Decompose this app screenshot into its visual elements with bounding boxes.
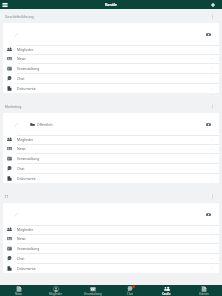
staticText: Veranstaltung xyxy=(17,66,40,71)
staticText: Mitglieder xyxy=(17,227,34,232)
button[interactable]: Mitglieder xyxy=(3,135,219,144)
button[interactable]: Chat xyxy=(3,73,219,83)
staticText: News xyxy=(17,236,26,241)
button[interactable]: Add xyxy=(209,1,217,9)
button[interactable]: Dokumente xyxy=(3,83,219,93)
button[interactable]: Dateien xyxy=(185,285,222,296)
staticText: Mitglieder xyxy=(17,47,34,52)
staticText: Mitglieder xyxy=(17,137,34,142)
staticText: News xyxy=(17,146,26,151)
staticText: Chat xyxy=(17,76,25,81)
button[interactable]: Dokumente xyxy=(3,173,219,183)
staticText: Mitglieder xyxy=(49,292,62,296)
button[interactable]: Menu xyxy=(1,1,9,9)
staticText: Veranstaltung xyxy=(17,156,40,161)
button[interactable]: Chat xyxy=(3,163,219,173)
staticText: Dokumente xyxy=(17,266,36,271)
staticText: Kanäle xyxy=(162,292,171,296)
staticText: Dokumente xyxy=(17,86,36,91)
button[interactable]: Veranstaltung xyxy=(74,285,111,296)
button[interactable]: Chat xyxy=(111,285,148,296)
button[interactable]: More options xyxy=(208,12,217,21)
button[interactable]: Chat xyxy=(3,253,219,263)
button[interactable]: Mitglieder xyxy=(37,285,74,296)
staticText: Geschäftsführung xyxy=(5,14,34,19)
button[interactable]: Mitglieder xyxy=(3,45,219,54)
staticText: Öffentlich xyxy=(37,122,53,127)
staticText: Veranstaltung xyxy=(84,292,102,296)
button[interactable]: News xyxy=(3,234,219,243)
button[interactable]: Mitglieder xyxy=(3,225,219,234)
button[interactable]: Kanäle xyxy=(148,285,185,296)
button[interactable]: Dokumente xyxy=(3,263,219,273)
staticText: Marketing xyxy=(5,104,22,109)
button[interactable]: More options xyxy=(208,102,217,111)
button[interactable]: News xyxy=(0,285,37,296)
button[interactable]: Camera xyxy=(206,212,211,217)
button[interactable]: Camera xyxy=(206,122,211,127)
staticText: Chat xyxy=(17,256,25,261)
button[interactable]: News xyxy=(3,54,219,63)
staticText: Dateien xyxy=(199,292,209,296)
staticText: Chat xyxy=(127,292,133,296)
staticText: News xyxy=(17,56,26,61)
staticText: Kanäle xyxy=(105,2,117,7)
button[interactable]: Veranstaltung xyxy=(3,243,219,253)
button[interactable]: Camera xyxy=(206,32,211,37)
staticText: Chat xyxy=(17,166,25,171)
button[interactable]: More options xyxy=(208,192,217,201)
button[interactable]: Veranstaltung xyxy=(3,153,219,163)
staticText: Veranstaltung xyxy=(17,246,40,251)
staticText: IT xyxy=(5,194,9,199)
staticText: Dokumente xyxy=(17,176,36,181)
button[interactable]: News xyxy=(3,144,219,153)
staticText: News xyxy=(15,292,22,296)
button[interactable]: Veranstaltung xyxy=(3,63,219,73)
